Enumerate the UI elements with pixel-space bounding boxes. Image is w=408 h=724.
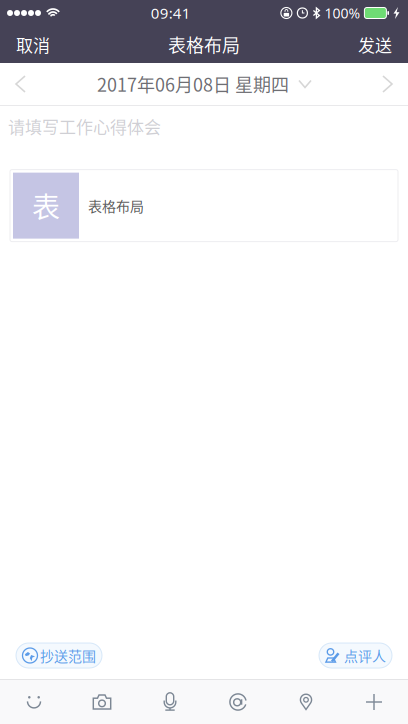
button[interactable]: Next day [367, 64, 408, 104]
button[interactable]: 发送 [358, 24, 408, 65]
staticText: 09:41 [151, 3, 191, 23]
staticText: 抄送范围 [40, 645, 96, 666]
staticText: 发送 [358, 32, 392, 57]
button[interactable]: 2017年06月08日 星期四 [97, 61, 311, 107]
staticText: 点评人 [344, 645, 386, 666]
button[interactable]: 抄送范围 [16, 643, 102, 668]
button[interactable]: 表 [10, 170, 398, 242]
button[interactable]: Emoji [0, 680, 68, 724]
staticText: 表格布局 [88, 195, 144, 216]
staticText: 请填写工作心得体会 [8, 114, 161, 139]
button[interactable]: Previous day [0, 64, 41, 104]
button[interactable]: Mention [204, 680, 272, 724]
staticText: 表格布局 [168, 31, 240, 58]
staticText: 取消 [16, 32, 50, 57]
button[interactable]: More [340, 680, 408, 724]
staticText: 表 [32, 185, 60, 226]
button[interactable]: Voice [136, 680, 204, 724]
staticText: 2017年06月08日 星期四 [97, 71, 289, 97]
button[interactable]: 点评人 [319, 643, 392, 668]
button[interactable]: Camera [68, 680, 136, 724]
button[interactable]: Location [272, 680, 340, 724]
button[interactable]: 取消 [0, 24, 50, 65]
staticText: 100% [324, 3, 360, 23]
